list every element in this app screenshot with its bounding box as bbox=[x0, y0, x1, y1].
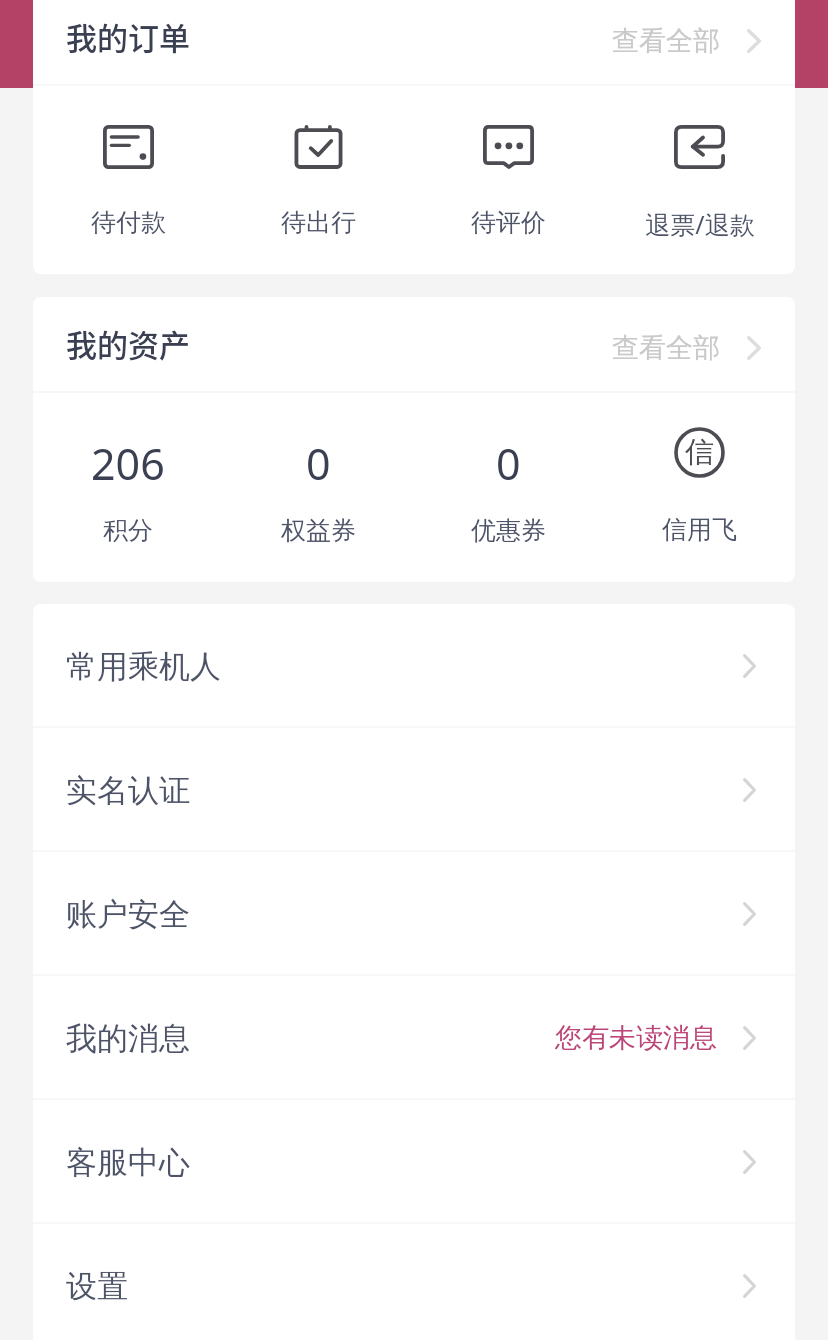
button[interactable]: 账户安全 bbox=[33, 852, 795, 976]
staticText: 优惠券 bbox=[471, 515, 546, 546]
button[interactable]: 206 bbox=[33, 393, 223, 546]
staticText: 您有未读消息 bbox=[555, 1021, 717, 1055]
staticText: 账户安全 bbox=[66, 895, 190, 934]
staticText: 206 bbox=[91, 434, 165, 493]
button[interactable]: 设置 bbox=[33, 1224, 795, 1340]
button[interactable]: 待出行 bbox=[223, 86, 413, 238]
button[interactable]: 0 bbox=[223, 393, 413, 546]
staticText: 退票/退款 bbox=[645, 207, 755, 241]
staticText: 信 bbox=[685, 434, 714, 471]
button[interactable]: 客服中心 bbox=[33, 1100, 795, 1224]
button[interactable]: 我的消息 bbox=[33, 976, 795, 1100]
staticText: 0 bbox=[496, 434, 521, 493]
button[interactable]: 信 bbox=[604, 393, 795, 545]
staticText: 待付款 bbox=[91, 207, 166, 238]
button[interactable]: 退票/退款 bbox=[604, 86, 795, 241]
button[interactable]: 实名认证 bbox=[33, 728, 795, 852]
button[interactable]: 常用乘机人 bbox=[33, 604, 795, 728]
staticText: 积分 bbox=[103, 515, 153, 546]
staticText: 待评价 bbox=[471, 207, 546, 238]
button[interactable]: 待付款 bbox=[33, 86, 223, 238]
staticText: 查看全部 bbox=[612, 24, 720, 58]
button[interactable]: 0 bbox=[413, 393, 604, 546]
staticText: 常用乘机人 bbox=[66, 647, 221, 686]
staticText: 我的订单 bbox=[66, 14, 190, 59]
staticText: 0 bbox=[306, 434, 331, 493]
staticText: 待出行 bbox=[281, 207, 356, 238]
button[interactable]: 查看全部 我的订单 bbox=[612, 24, 761, 58]
button[interactable]: 查看全部 我的资产 bbox=[612, 331, 761, 365]
button[interactable]: 待评价 bbox=[413, 86, 604, 238]
staticText: 信用飞 bbox=[662, 514, 737, 545]
staticText: 客服中心 bbox=[66, 1143, 190, 1182]
staticText: 实名认证 bbox=[66, 771, 190, 810]
staticText: 我的消息 bbox=[66, 1019, 190, 1058]
staticText: 查看全部 bbox=[612, 331, 720, 365]
staticText: 我的资产 bbox=[66, 321, 190, 366]
staticText: 权益券 bbox=[281, 515, 356, 546]
staticText: 设置 bbox=[66, 1267, 128, 1306]
